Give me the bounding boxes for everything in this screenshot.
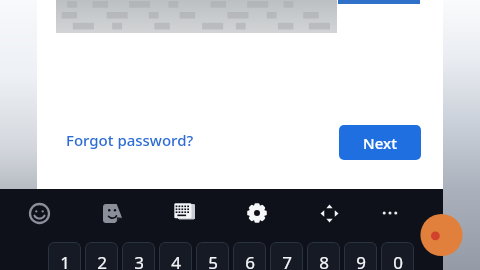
button[interactable]: 9	[344, 242, 377, 270]
staticText: Next	[363, 133, 397, 153]
button[interactable]: Stickers	[97, 198, 127, 228]
button[interactable]: 7	[270, 242, 303, 270]
button[interactable]: 3	[122, 242, 155, 270]
button[interactable]: Next	[339, 125, 421, 160]
staticText: 7	[282, 251, 292, 270]
staticText: 6	[245, 251, 255, 270]
button[interactable]: 0	[381, 242, 414, 270]
staticText: 1	[60, 251, 70, 270]
staticText: Forgot password?	[66, 130, 194, 150]
staticText: 4	[171, 251, 181, 270]
button[interactable]: 2	[85, 242, 118, 270]
button[interactable]: Emoji	[24, 198, 54, 228]
staticText: 3	[134, 251, 144, 270]
button[interactable]: 8	[307, 242, 340, 270]
button[interactable]: 1	[48, 242, 81, 270]
button[interactable]: More options	[375, 198, 405, 228]
button[interactable]: Forgot password?	[60, 126, 200, 154]
button[interactable]: Settings	[242, 198, 272, 228]
staticText: 9	[356, 251, 366, 270]
staticText: 0	[393, 251, 403, 270]
button[interactable]: 6	[233, 242, 266, 270]
button[interactable]: 5	[196, 242, 229, 270]
button[interactable]: Move keyboard	[314, 198, 344, 228]
staticText: 5	[208, 251, 218, 270]
staticText: 2	[97, 251, 107, 270]
button[interactable]: Switch keyboard	[169, 198, 199, 228]
button[interactable]: 4	[159, 242, 192, 270]
staticText: 8	[319, 251, 329, 270]
